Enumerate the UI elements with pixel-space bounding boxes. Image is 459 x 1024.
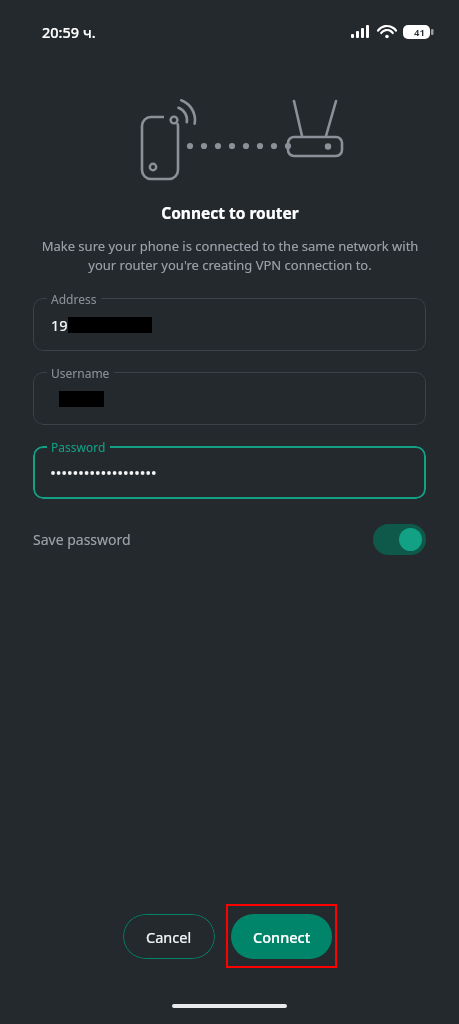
button[interactable]: Cancel xyxy=(123,914,215,959)
staticText: Cancel xyxy=(146,927,192,947)
staticText: Address xyxy=(51,291,97,307)
staticText: 20:59 ч. xyxy=(42,22,96,42)
staticText: Username xyxy=(51,365,110,381)
staticText: 41 xyxy=(414,26,425,39)
staticText: Password xyxy=(51,439,106,455)
button[interactable]: 19 xyxy=(33,298,426,351)
button[interactable] xyxy=(33,446,426,499)
staticText: Connect xyxy=(253,927,311,947)
staticText: Save password xyxy=(33,530,131,549)
button[interactable]: Save password xyxy=(33,519,426,559)
staticText: Connect to router xyxy=(161,202,299,223)
staticText: 19 xyxy=(51,315,68,335)
button[interactable]: Connect xyxy=(231,914,332,959)
staticText: Make sure your phone is connected to the… xyxy=(39,237,421,274)
button[interactable] xyxy=(33,372,426,425)
